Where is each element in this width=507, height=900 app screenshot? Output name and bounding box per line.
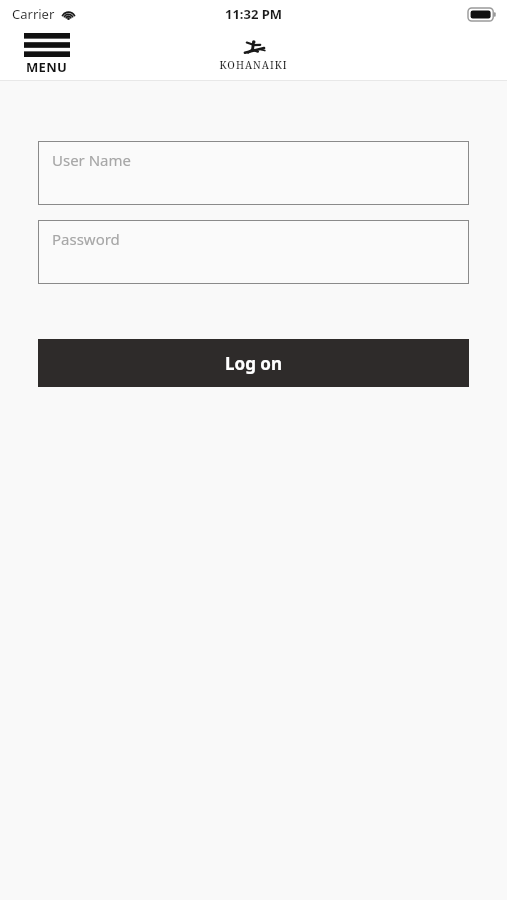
button[interactable]: Password xyxy=(38,220,469,284)
staticText: User Name xyxy=(52,150,132,170)
staticText: Password xyxy=(52,229,120,249)
staticText: MENU xyxy=(26,58,68,76)
button[interactable]: Log on xyxy=(38,339,469,387)
staticText: KOHANAIKI xyxy=(219,58,288,72)
staticText: Log on xyxy=(225,352,282,375)
staticText: Carrier xyxy=(12,5,55,23)
button[interactable]: Kohanaiki home xyxy=(219,40,288,72)
button[interactable]: User Name xyxy=(38,141,469,205)
staticText: 11:32 PM xyxy=(225,5,283,23)
button[interactable]: Menu xyxy=(24,33,70,76)
